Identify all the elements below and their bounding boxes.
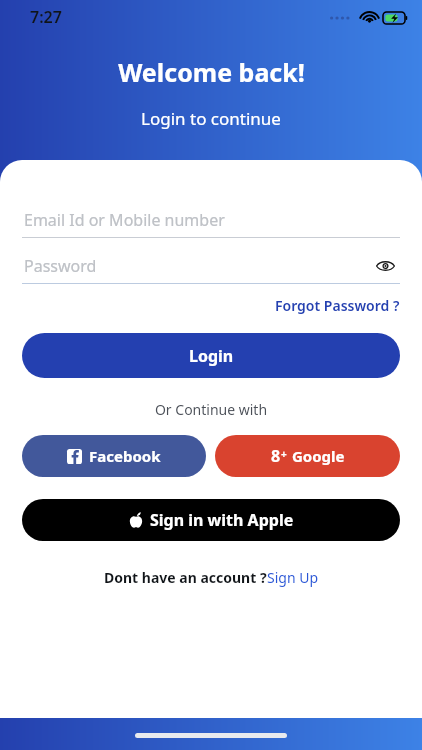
staticText: 8: [271, 445, 281, 467]
button[interactable]: Login: [22, 333, 400, 378]
staticText: Password: [24, 255, 97, 277]
staticText: Login to continue: [141, 107, 281, 130]
button[interactable]: Show password: [370, 251, 400, 281]
staticText: Welcome back!: [118, 55, 305, 89]
button[interactable]: Facebook: [22, 435, 206, 477]
staticText: Sign Up: [267, 568, 319, 587]
staticText: Sign in with Apple: [150, 509, 294, 531]
staticText: +: [281, 447, 287, 461]
button[interactable]: Email Id or Mobile number: [22, 203, 400, 237]
button[interactable]: 8: [215, 435, 400, 477]
staticText: Email Id or Mobile number: [24, 209, 225, 231]
button[interactable]: Sign Up: [267, 568, 319, 587]
staticText: Or Continue with: [22, 400, 400, 419]
button[interactable]: Password: [22, 249, 400, 283]
staticText: Google: [292, 446, 345, 466]
staticText: 7:27: [30, 6, 62, 28]
button[interactable]: Sign in with Apple: [22, 499, 400, 541]
staticText: Forgot Password ?: [275, 296, 400, 315]
staticText: Facebook: [89, 446, 161, 466]
button[interactable]: Forgot Password ?: [275, 294, 400, 317]
staticText: Login: [189, 345, 234, 367]
staticText: Dont have an account ?: [104, 568, 267, 587]
